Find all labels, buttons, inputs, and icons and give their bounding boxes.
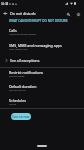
staticText: Default duration bbox=[9, 84, 37, 89]
staticText: Not set bbox=[9, 103, 17, 106]
staticText: until you turn off bbox=[9, 89, 26, 92]
button[interactable]: Schedules bbox=[0, 97, 84, 109]
button[interactable]: Turn on now bbox=[11, 113, 31, 120]
staticText: See all exceptions bbox=[10, 58, 40, 63]
button[interactable]: Calls bbox=[0, 27, 84, 39]
button[interactable]: Search bbox=[64, 10, 72, 18]
staticText: Calls bbox=[9, 28, 17, 33]
staticText: SMS, MMS and messaging apps bbox=[9, 43, 62, 48]
staticText: WHAT CAN INTERRUPT DO NOT DISTURB bbox=[9, 19, 68, 23]
button[interactable]: SMS, MMS and messaging apps bbox=[0, 42, 84, 54]
staticText: Restrict notifications bbox=[9, 70, 44, 75]
staticText: From contacts only bbox=[9, 48, 28, 51]
button[interactable]: See all exceptions bbox=[0, 57, 84, 64]
staticText: Turn on now bbox=[12, 115, 30, 119]
staticText: Do not disturb bbox=[10, 11, 36, 16]
button[interactable]: Restrict notifications bbox=[0, 69, 84, 81]
button[interactable]: Help bbox=[74, 10, 82, 18]
button[interactable]: Default duration bbox=[0, 83, 84, 95]
staticText: Schedules bbox=[9, 98, 26, 103]
staticText: Allow from starred contacts bbox=[9, 33, 37, 36]
button[interactable]: Back bbox=[1, 9, 10, 18]
staticText: Partially hidden bbox=[9, 75, 25, 78]
staticText: 04:37 bbox=[1, 2, 9, 6]
